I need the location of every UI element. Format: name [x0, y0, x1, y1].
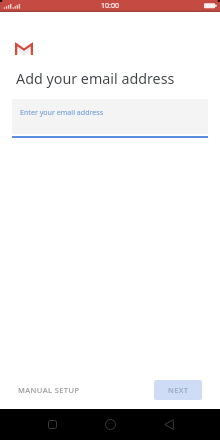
button[interactable]: Back: [157, 412, 181, 436]
staticText: NEXT: [168, 385, 189, 395]
button[interactable]: MANUAL SETUP: [10, 378, 88, 402]
staticText: Enter your email address: [20, 107, 104, 117]
button[interactable]: NEXT: [154, 380, 202, 400]
staticText: Add your email address: [16, 69, 175, 88]
button[interactable]: Home: [98, 412, 122, 436]
staticText: MANUAL SETUP: [18, 385, 80, 395]
button[interactable]: Enter your email address: [12, 99, 208, 138]
button[interactable]: Recents: [40, 412, 64, 436]
staticText: 10:00: [101, 1, 119, 11]
